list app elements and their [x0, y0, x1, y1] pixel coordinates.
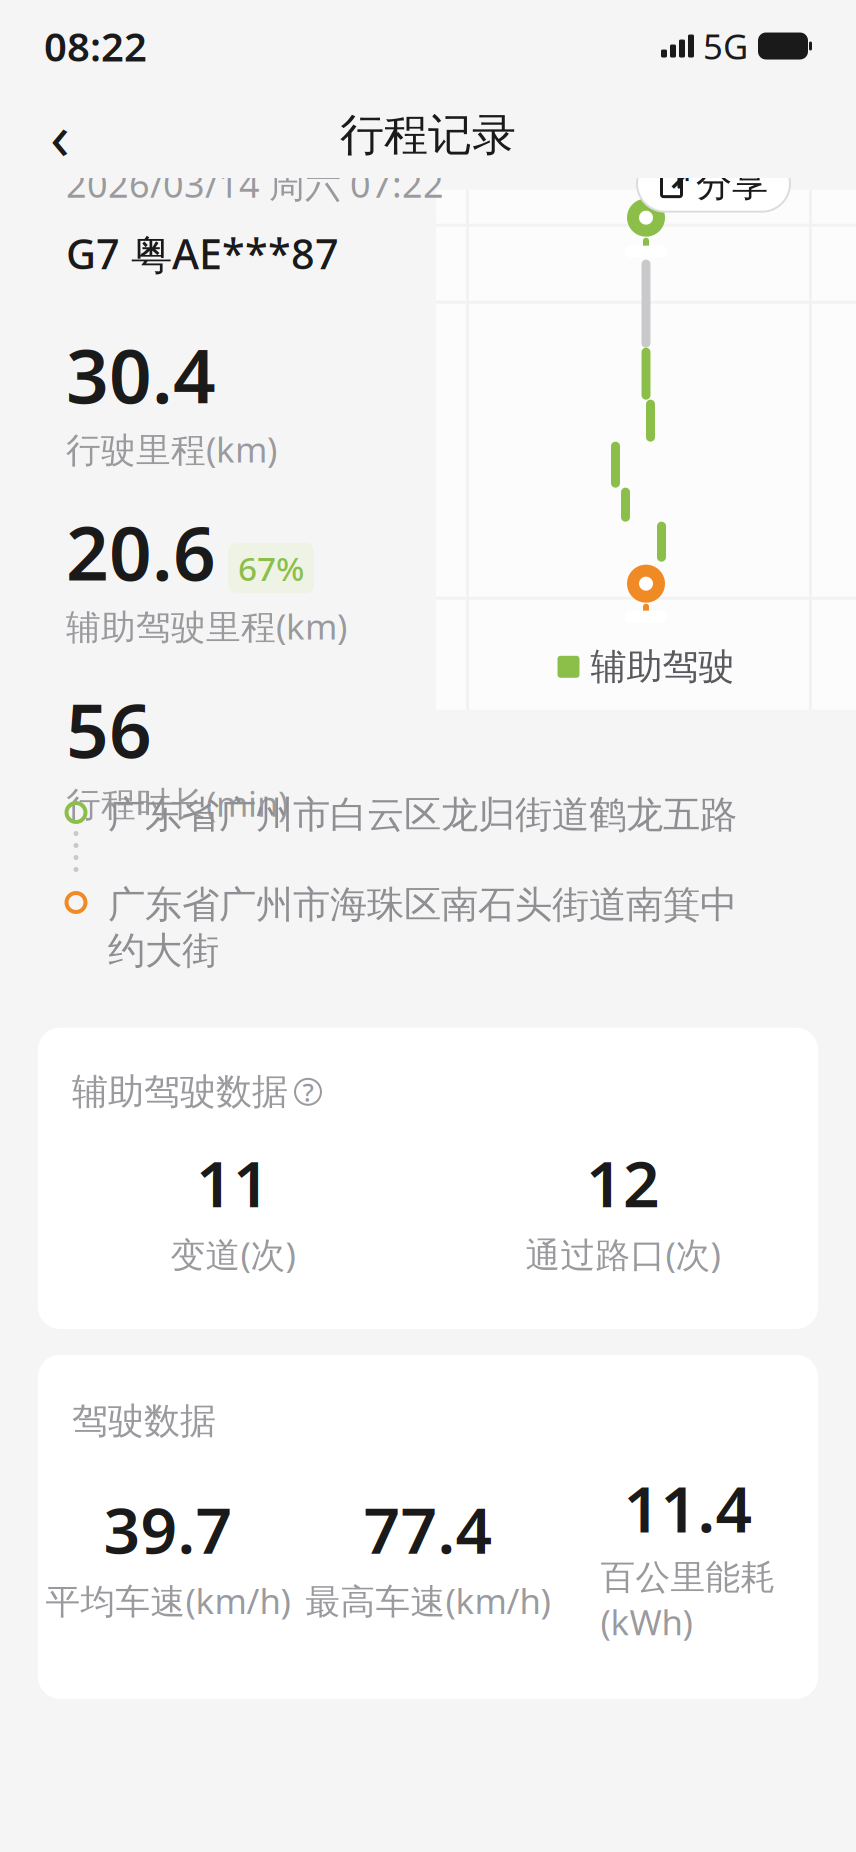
staticText: 百公里能耗(kWh) [600, 1556, 775, 1645]
staticText: ? [302, 1075, 313, 1109]
staticText: 行程记录 [340, 108, 516, 162]
staticText: 12 [586, 1140, 660, 1225]
staticText: ‹ [50, 92, 70, 177]
staticText: 广东省广州市海珠区南石头街道南箕中约大街 [108, 882, 737, 974]
staticText: 77.4 [363, 1486, 492, 1571]
staticText: 5G [703, 23, 748, 69]
staticText: 广东省广州市白云区龙归街道鹤龙五路 [108, 792, 737, 838]
staticText: 辅助驾驶数据 [72, 1070, 288, 1114]
staticText: 11 [196, 1140, 270, 1225]
staticText: 30.4 [66, 325, 216, 424]
staticText: 分享 [696, 162, 768, 206]
staticText: 20.6 [66, 502, 216, 601]
staticText: 行程时长(min) [66, 780, 288, 826]
staticText: 驾驶数据 [72, 1399, 216, 1443]
staticText: 67% [238, 546, 304, 590]
staticText: ↗ [667, 164, 692, 197]
staticText: 2026/03/14 周六 07:22 [66, 160, 444, 208]
staticText: 最高车速(km/h) [305, 1577, 550, 1623]
staticText: 56 [66, 679, 152, 778]
staticText: 08:22 [44, 19, 147, 72]
staticText: G7 粤AE***87 [66, 226, 339, 281]
button[interactable]: ↗ [637, 156, 790, 212]
staticText: 变道(次) [170, 1231, 295, 1277]
staticText: 39.7 [103, 1486, 232, 1571]
staticText: 通过路口(次) [525, 1231, 720, 1277]
staticText: 平均车速(km/h) [45, 1577, 290, 1623]
button[interactable]: 辅助驾驶数据说明 [295, 1079, 321, 1105]
staticText: 辅助驾驶里程(km) [66, 603, 347, 649]
staticText: 11.4 [623, 1465, 752, 1550]
staticText: 辅助驾驶 [590, 645, 734, 689]
button[interactable]: 返回 [28, 103, 92, 167]
staticText: 行驶里程(km) [66, 426, 277, 472]
